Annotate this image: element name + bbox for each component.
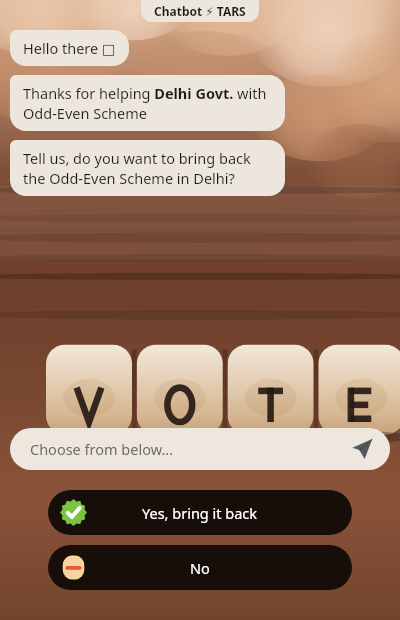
button[interactable]: Hello there □: [10, 30, 129, 66]
staticText: Hello there □: [23, 38, 116, 58]
staticText: Choose from below...: [30, 439, 350, 459]
button[interactable]: Send: [350, 437, 374, 461]
button[interactable]: Tell us, do you want to bring back the O…: [10, 140, 285, 196]
staticText: No: [190, 558, 210, 578]
button[interactable]: Chatbot ⚡ TARS: [141, 0, 259, 22]
button[interactable]: Thanks for helping Delhi Govt. with Odd-…: [10, 75, 285, 131]
button[interactable]: Choose from below...: [10, 428, 390, 470]
staticText: Thanks for helping Delhi Govt. with Odd-…: [23, 83, 272, 123]
button[interactable]: Yes, bring it back: [48, 490, 352, 535]
other: Yes: [60, 499, 87, 526]
other: No: [60, 554, 87, 581]
staticText: Yes, bring it back: [142, 503, 258, 523]
staticText: Tell us, do you want to bring back the O…: [23, 148, 272, 188]
staticText: Chatbot ⚡ TARS: [154, 3, 246, 19]
button[interactable]: No: [48, 545, 352, 590]
